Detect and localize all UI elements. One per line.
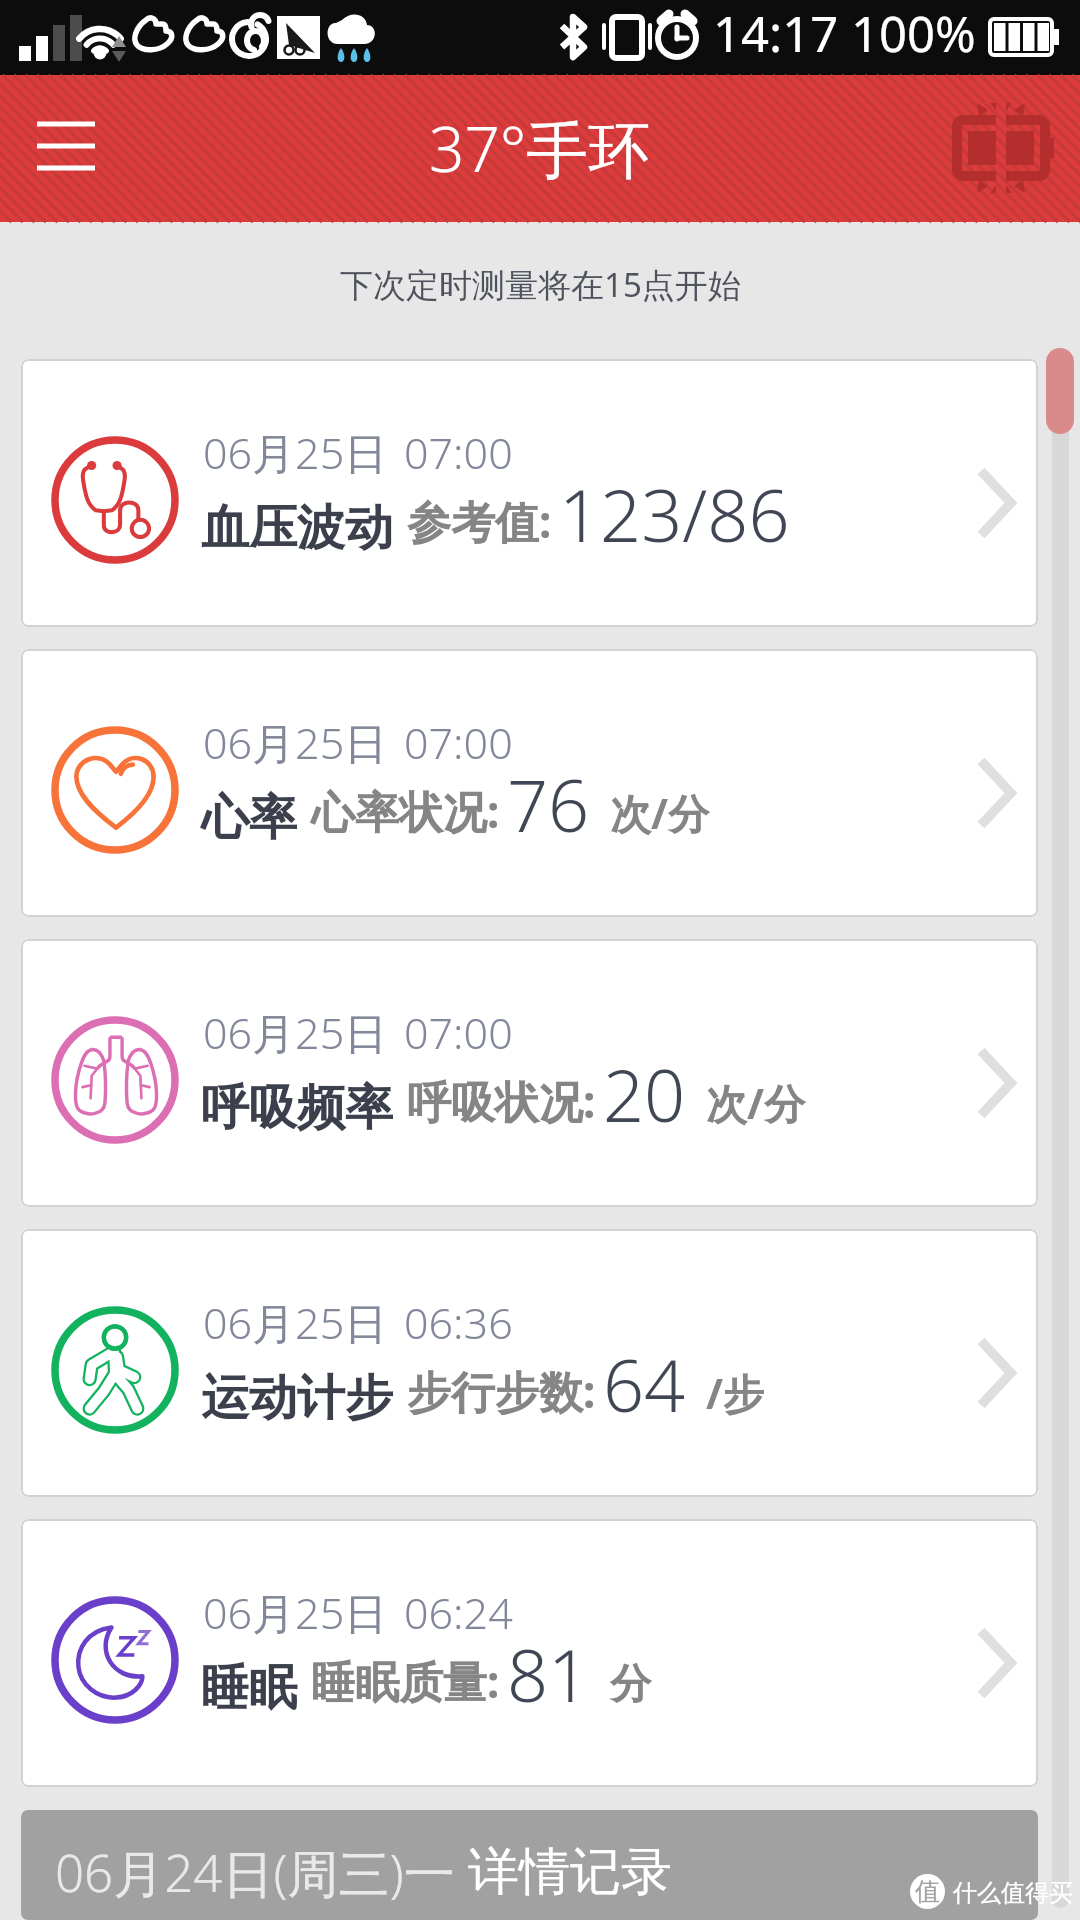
staticText: 37°手环 [429, 106, 651, 191]
button[interactable]: 06月25日 [21, 1229, 1038, 1497]
staticText: 次/分 [610, 785, 710, 841]
staticText: 心率 [201, 788, 297, 848]
staticText: 心率状况: [311, 781, 500, 841]
staticText: 下次定时测量将在15点开始 [340, 262, 741, 307]
staticText: 06:36 [404, 1293, 513, 1352]
staticText: 07:00 [404, 423, 513, 482]
staticText: /步 [706, 1365, 765, 1421]
staticText: 06月25日 [203, 423, 388, 482]
staticText: 06:24 [404, 1583, 513, 1642]
button[interactable]: 06月25日 [21, 939, 1038, 1207]
button[interactable]: 06月24日(周三)一 [21, 1810, 1038, 1920]
staticText: 06月25日 [203, 1293, 388, 1352]
staticText: 14:17 100% [713, 0, 976, 67]
staticText: 123/86 [559, 465, 790, 563]
staticText: 76 [507, 755, 590, 853]
staticText: 分 [610, 1659, 651, 1711]
button[interactable]: Menu [18, 103, 108, 193]
button[interactable]: Band battery [950, 97, 1052, 199]
staticText: 呼吸状况: [407, 1071, 596, 1131]
staticText: 睡眠质量: [311, 1651, 500, 1711]
staticText: 步行步数: [407, 1361, 596, 1421]
staticText: 什么值得买 [953, 1878, 1073, 1908]
staticText: 次/分 [706, 1075, 806, 1131]
staticText: 20 [603, 1045, 686, 1143]
staticText: 06月24日(周三)一 [55, 1837, 468, 1907]
button[interactable]: 06月25日 [21, 1519, 1038, 1787]
staticText: 详情记录 [468, 1840, 672, 1904]
staticText: 血压波动 [201, 498, 393, 558]
staticText: 呼吸频率 [201, 1078, 393, 1138]
staticText: 81 [507, 1625, 590, 1723]
staticText: 运动计步 [201, 1368, 393, 1428]
staticText: 睡眠 [201, 1658, 297, 1718]
staticText: 06月25日 [203, 1003, 388, 1062]
staticText: 06月25日 [203, 1583, 388, 1642]
button[interactable]: 06月25日 [21, 649, 1038, 917]
staticText: 07:00 [404, 1003, 513, 1062]
staticText: 06月25日 [203, 713, 388, 772]
staticText: 值 [915, 1876, 940, 1907]
button[interactable]: 06月25日 [21, 359, 1038, 627]
staticText: 参考值: [407, 491, 552, 551]
staticText: 64 [603, 1335, 686, 1433]
staticText: 07:00 [404, 713, 513, 772]
